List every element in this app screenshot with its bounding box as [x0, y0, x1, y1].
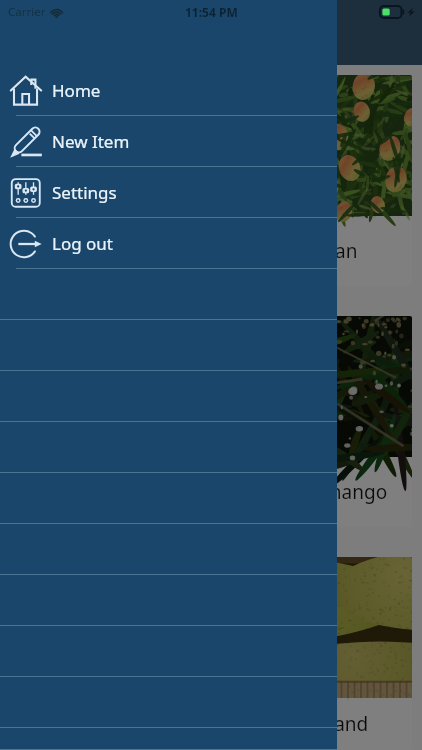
button[interactable] [0, 422, 337, 473]
staticText: 11:54 PM [185, 4, 238, 20]
staticText: Home [52, 79, 101, 102]
button[interactable]: Mango prices rise above one thousand [10, 557, 412, 750]
button[interactable] [0, 371, 337, 422]
button[interactable] [0, 524, 337, 575]
button[interactable] [0, 473, 337, 524]
button[interactable]: The flowering season of a Sindhri mango [10, 316, 412, 527]
staticText: Mangoes on the tree in rural Pakistan [22, 238, 358, 264]
button[interactable] [0, 677, 337, 728]
staticText: Mango prices rise above one thousand [22, 711, 369, 737]
button[interactable]: Settings [0, 167, 337, 218]
staticText: Log out [52, 232, 113, 255]
button[interactable] [0, 626, 337, 677]
button[interactable] [0, 269, 337, 320]
button[interactable]: Log out [0, 218, 337, 269]
button[interactable]: Mangoes on the tree in rural Pakistan [10, 75, 412, 286]
staticText: The flowering season of a Sindhri mango [22, 479, 388, 505]
staticText: New Item [52, 130, 130, 153]
staticText: Carrier [8, 4, 46, 20]
button[interactable]: New Item [0, 116, 337, 167]
button[interactable] [0, 728, 337, 750]
button[interactable] [0, 575, 337, 626]
button[interactable]: Home [0, 65, 337, 116]
staticText: Settings [52, 181, 117, 204]
button[interactable] [0, 320, 337, 371]
